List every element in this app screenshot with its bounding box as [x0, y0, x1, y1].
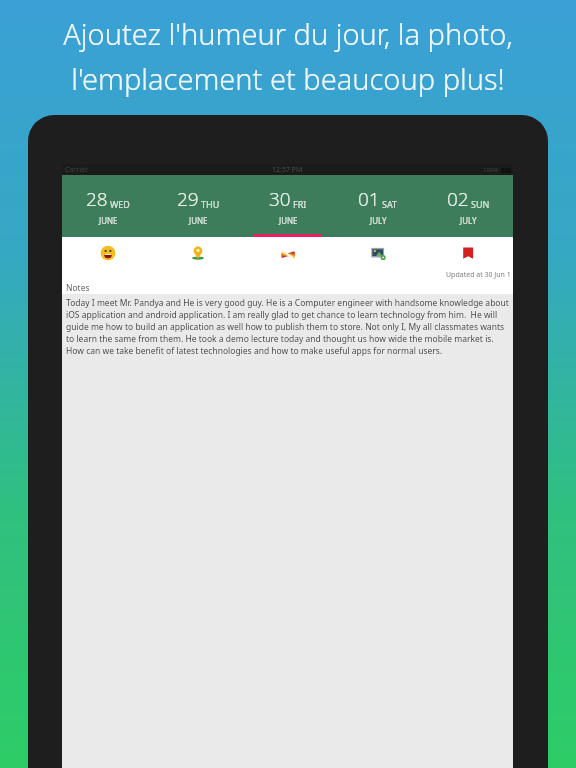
staticText: 01: [358, 186, 380, 212]
staticText: 100%: [483, 166, 499, 174]
staticText: Notes: [66, 282, 90, 294]
button[interactable]: Bookmark: [423, 237, 513, 269]
staticText: Carrier: [65, 165, 88, 175]
staticText: JUNE: [99, 215, 118, 226]
staticText: JULY: [370, 215, 387, 226]
staticText: Updated at 30 Jun 1: [446, 270, 511, 280]
staticText: 29: [177, 186, 199, 212]
button[interactable]: 02: [423, 175, 513, 237]
staticText: WED: [110, 198, 130, 210]
staticText: JUNE: [189, 215, 208, 226]
staticText: 02: [447, 186, 469, 212]
staticText: JUNE: [279, 215, 298, 226]
staticText: FRI: [293, 198, 307, 210]
button[interactable]: Color: [243, 237, 333, 269]
button[interactable]: 01: [333, 175, 423, 237]
button[interactable]: Photo: [333, 237, 423, 269]
staticText: SAT: [382, 198, 398, 210]
staticText: JULY: [460, 215, 477, 226]
button[interactable]: Location: [153, 237, 243, 269]
button[interactable]: Mood: [62, 237, 153, 269]
staticText: Today I meet Mr. Pandya and He is very g…: [66, 297, 509, 357]
staticText: 30: [269, 186, 291, 212]
staticText: SUN: [471, 198, 490, 210]
button[interactable]: 29: [153, 175, 243, 237]
staticText: 28: [86, 186, 108, 212]
staticText: Ajoutez l'humeur du jour, la photo,: [18, 14, 558, 53]
staticText: l'emplacement et beaucoup plus!: [18, 59, 558, 98]
staticText: THU: [201, 198, 220, 210]
button[interactable]: 28: [62, 175, 153, 237]
button[interactable]: 30: [243, 175, 333, 237]
staticText: 12:57 PM: [272, 165, 303, 175]
